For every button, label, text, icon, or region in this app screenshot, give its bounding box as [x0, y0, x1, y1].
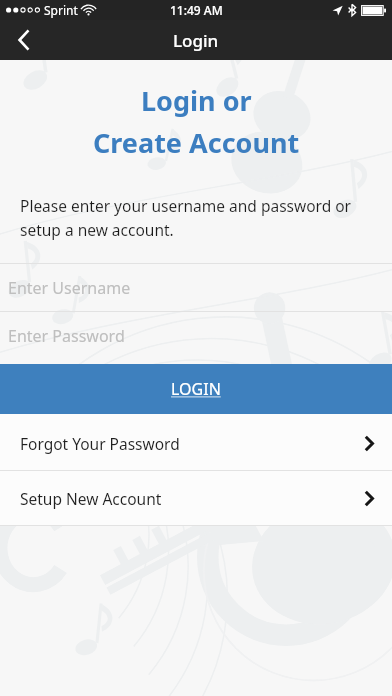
staticText: Enter Password: [8, 325, 125, 347]
staticText: LOGIN: [171, 378, 221, 400]
button[interactable]: Enter Username: [0, 264, 392, 311]
button[interactable]: Forgot Your Password: [0, 416, 392, 470]
button[interactable]: Back: [0, 20, 48, 60]
staticText: setup a new account.: [20, 219, 174, 240]
staticText: Forgot Your Password: [20, 433, 180, 454]
staticText: Enter Username: [8, 277, 131, 299]
staticText: Setup New Account: [20, 488, 162, 509]
button[interactable]: LOGIN: [0, 364, 392, 414]
button[interactable]: Enter Password: [0, 312, 392, 359]
staticText: Login or: [141, 82, 252, 119]
button[interactable]: Setup New Account: [0, 471, 392, 525]
staticText: 11:49 AM: [170, 2, 223, 18]
staticText: Login: [173, 29, 219, 52]
staticText: Sprint: [44, 2, 78, 18]
staticText: Please enter your username and password …: [20, 195, 351, 216]
staticText: Create Account: [93, 124, 300, 161]
